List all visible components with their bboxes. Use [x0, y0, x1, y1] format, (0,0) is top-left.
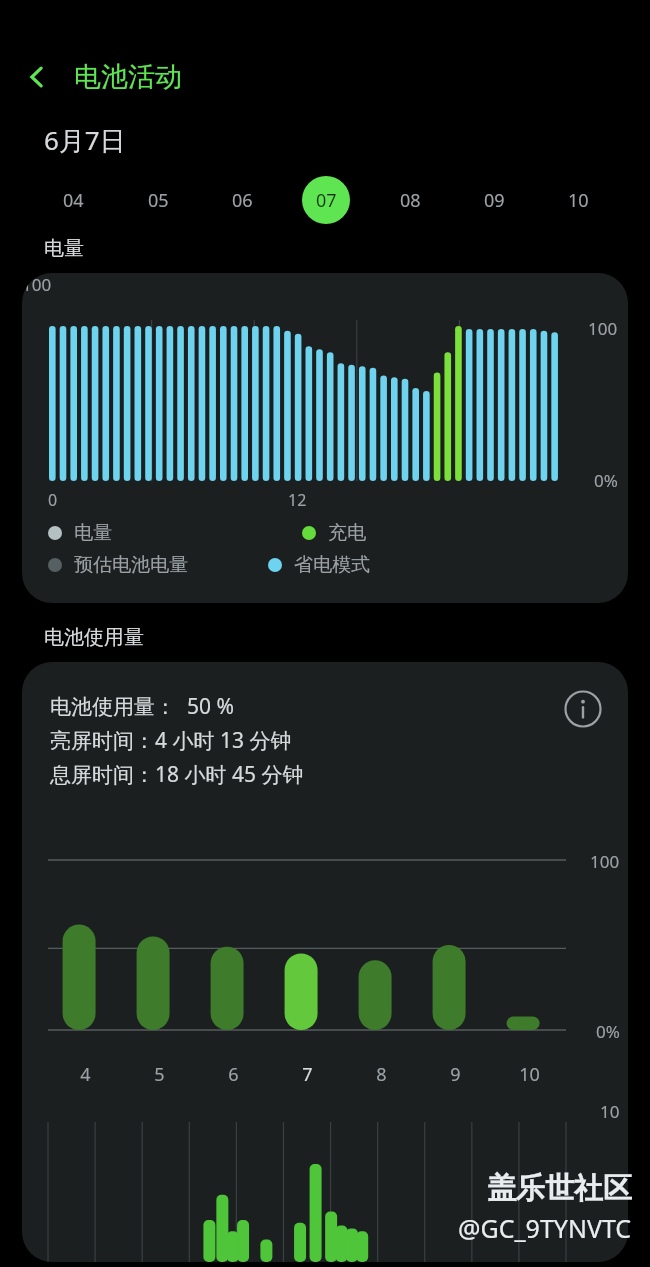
staticText: 07 — [316, 188, 337, 213]
button[interactable]: 电池使用量： 50 % — [22, 662, 628, 1262]
staticText: 10 — [600, 1100, 620, 1123]
staticText: 电池使用量： 50 % — [50, 692, 234, 721]
staticText: 100 — [588, 317, 618, 340]
staticText: 09 — [484, 188, 505, 213]
staticText: 6月7日 — [44, 122, 126, 158]
button[interactable]: 07 — [284, 172, 368, 228]
button[interactable]: 09 — [452, 172, 536, 228]
staticText: 08 — [400, 188, 421, 213]
staticText: 6 — [228, 1062, 239, 1087]
staticText: 0% — [594, 469, 618, 492]
button[interactable]: 04 — [30, 172, 115, 228]
staticText: 电量 — [74, 521, 112, 545]
staticText: 10 — [519, 1062, 540, 1087]
staticText: 100 — [590, 850, 620, 873]
button[interactable]: 10 — [536, 172, 620, 228]
staticText: 电池活动 — [74, 60, 182, 94]
staticText: 盖乐世社区 — [487, 1170, 632, 1207]
staticText: 10 — [568, 188, 589, 213]
button[interactable]: Back — [0, 48, 74, 106]
staticText: 04 — [63, 188, 84, 213]
staticText: 0 — [48, 489, 58, 511]
button[interactable]: 06 — [200, 172, 284, 228]
staticText: 省电模式 — [294, 553, 370, 577]
button[interactable]: 05 — [115, 172, 200, 228]
staticText: 亮屏时间：4 小时 13 分钟 — [50, 726, 292, 755]
button[interactable]: 08 — [368, 172, 452, 228]
staticText: 06 — [232, 188, 253, 213]
staticText: 4 — [80, 1062, 91, 1087]
staticText: 电池使用量 — [44, 625, 144, 650]
staticText: 9 — [450, 1062, 461, 1087]
staticText: 0% — [596, 1020, 620, 1043]
staticText: 7 — [302, 1062, 313, 1087]
staticText: 100 — [22, 273, 52, 296]
staticText: 05 — [148, 188, 169, 213]
staticText: 充电 — [328, 521, 366, 545]
staticText: 5 — [154, 1062, 165, 1087]
staticText: 电量 — [44, 236, 84, 261]
staticText: 预估电池电量 — [74, 553, 188, 577]
button[interactable]: 100 — [22, 273, 628, 603]
staticText: @GC_9TYNVTC — [458, 1211, 632, 1245]
staticText: 8 — [376, 1062, 387, 1087]
staticText: 息屏时间：18 小时 45 分钟 — [50, 760, 304, 789]
staticText: 12 — [288, 489, 307, 511]
button[interactable]: Info — [560, 686, 606, 732]
